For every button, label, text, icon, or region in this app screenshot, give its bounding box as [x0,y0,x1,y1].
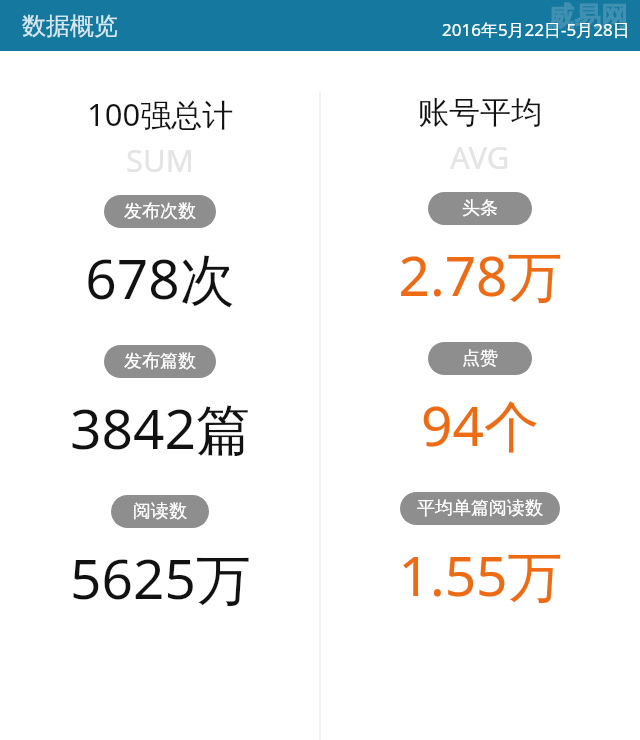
staticText: 账号平均 [418,93,542,132]
staticText: 3842篇 [70,390,251,465]
button[interactable]: 发布次数 [104,195,216,228]
staticText: AVG [450,136,510,178]
staticText: 阅读数 [133,500,187,523]
staticText: 发布次数 [124,200,196,223]
staticText: 100强总计 [87,93,234,135]
button[interactable]: 平均单篇阅读数 [400,492,560,525]
staticText: SUM [126,139,194,181]
staticText: 平均单篇阅读数 [417,497,543,520]
staticText: 头条 [462,197,498,220]
button[interactable]: 头条 [428,192,532,225]
staticText: 数据概览 [22,11,118,41]
staticText: 威易网 [547,0,628,34]
staticText: 2016年5月22日-5月28日 [442,18,630,41]
button[interactable]: 阅读数 [111,495,209,528]
staticText: 2.78万 [398,237,563,312]
staticText: 5625万 [70,540,251,615]
button[interactable]: 发布篇数 [104,345,216,378]
staticText: 点赞 [462,347,498,370]
button[interactable]: 点赞 [428,342,532,375]
staticText: 发布篇数 [124,350,196,373]
staticText: 94个 [421,387,539,462]
staticText: 1.55万 [398,537,563,612]
staticText: 678次 [85,240,235,315]
